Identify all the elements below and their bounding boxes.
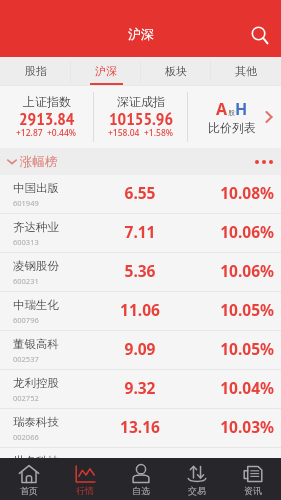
staticText: 行情: [76, 485, 94, 496]
staticText: 比价列表: [208, 120, 256, 135]
staticText: 10.04%: [180, 377, 274, 398]
button[interactable]: 齐达种业: [0, 214, 281, 253]
staticText: 10.05%: [180, 338, 274, 359]
staticText: 601949: [13, 198, 39, 208]
staticText: +12.87: [16, 127, 43, 139]
staticText: 其他: [235, 64, 257, 78]
staticText: +1.58%: [144, 127, 174, 139]
staticText: 10155.96: [109, 107, 174, 130]
staticText: 涨幅榜: [20, 154, 58, 170]
staticText: 9.09: [100, 338, 180, 359]
staticText: 10.03%: [180, 416, 274, 437]
staticText: 13.16: [100, 416, 180, 437]
staticText: H: [235, 98, 248, 120]
button[interactable]: 上证指数: [0, 86, 93, 148]
staticText: 10.06%: [180, 260, 274, 281]
staticText: 深证成指: [117, 94, 165, 109]
staticText: 董银高科: [13, 337, 59, 351]
staticText: 7.11: [100, 221, 180, 242]
staticText: 10.08%: [180, 182, 274, 203]
staticText: 凌钢股份: [13, 259, 59, 273]
staticText: 10.06%: [180, 221, 274, 242]
staticText: +0.44%: [47, 127, 77, 139]
staticText: 沪深: [128, 26, 154, 42]
button[interactable]: Search: [247, 22, 273, 48]
staticText: 沪深: [95, 64, 117, 78]
staticText: 齐达种业: [13, 220, 59, 234]
staticText: 2913.84: [19, 107, 75, 130]
staticText: 交易: [188, 485, 206, 496]
staticText: 首页: [20, 485, 38, 496]
button[interactable]: 股指: [0, 57, 71, 86]
staticText: 瑞泰科技: [13, 415, 59, 429]
button[interactable]: 自选: [113, 458, 169, 500]
button[interactable]: 深证成指: [94, 86, 187, 148]
staticText: 中瑞生化: [13, 298, 59, 312]
button[interactable]: 世名科技: [0, 448, 281, 487]
button[interactable]: 龙利控股: [0, 370, 281, 409]
staticText: 600231: [13, 276, 39, 286]
staticText: 世名科技: [13, 454, 59, 468]
button[interactable]: 中国出版: [0, 175, 281, 214]
staticText: 资讯: [244, 485, 262, 496]
staticText: 股指: [25, 64, 47, 78]
button[interactable]: More: [255, 148, 273, 175]
button[interactable]: 板块: [141, 57, 211, 86]
staticText: 5.36: [100, 260, 180, 281]
staticText: 自选: [132, 485, 150, 496]
button[interactable]: 沪深: [71, 57, 141, 86]
staticText: +158.04: [108, 127, 140, 139]
button[interactable]: 交易: [169, 458, 225, 500]
staticText: 中国出版: [13, 181, 59, 195]
staticText: 002066: [13, 432, 39, 442]
button[interactable]: 中瑞生化: [0, 292, 281, 331]
button[interactable]: 行情: [57, 458, 113, 500]
staticText: 10.05%: [180, 299, 274, 320]
staticText: 10.02%: [180, 455, 274, 476]
button[interactable]: 其他: [211, 57, 281, 86]
button[interactable]: 瑞泰科技: [0, 409, 281, 448]
staticText: 9.32: [100, 377, 180, 398]
staticText: 300522: [13, 471, 39, 481]
staticText: 11.06: [100, 299, 180, 320]
staticText: 6.55: [100, 182, 180, 203]
staticText: 上证指数: [23, 94, 71, 109]
staticText: 板块: [165, 64, 187, 78]
button[interactable]: 凌钢股份: [0, 253, 281, 292]
staticText: A: [216, 98, 228, 120]
staticText: 600796: [13, 315, 39, 325]
staticText: 002537: [13, 354, 39, 364]
button[interactable]: 首页: [0, 458, 57, 500]
button[interactable]: A: [188, 86, 281, 148]
button[interactable]: 资讯: [225, 458, 281, 500]
button[interactable]: 董银高科: [0, 331, 281, 370]
staticText: 18.12: [100, 455, 180, 476]
staticText: 龙利控股: [13, 376, 59, 390]
button[interactable]: 涨幅榜: [7, 148, 58, 175]
staticText: 600313: [13, 237, 39, 247]
staticText: 股: [228, 108, 235, 117]
staticText: 002752: [13, 393, 39, 403]
